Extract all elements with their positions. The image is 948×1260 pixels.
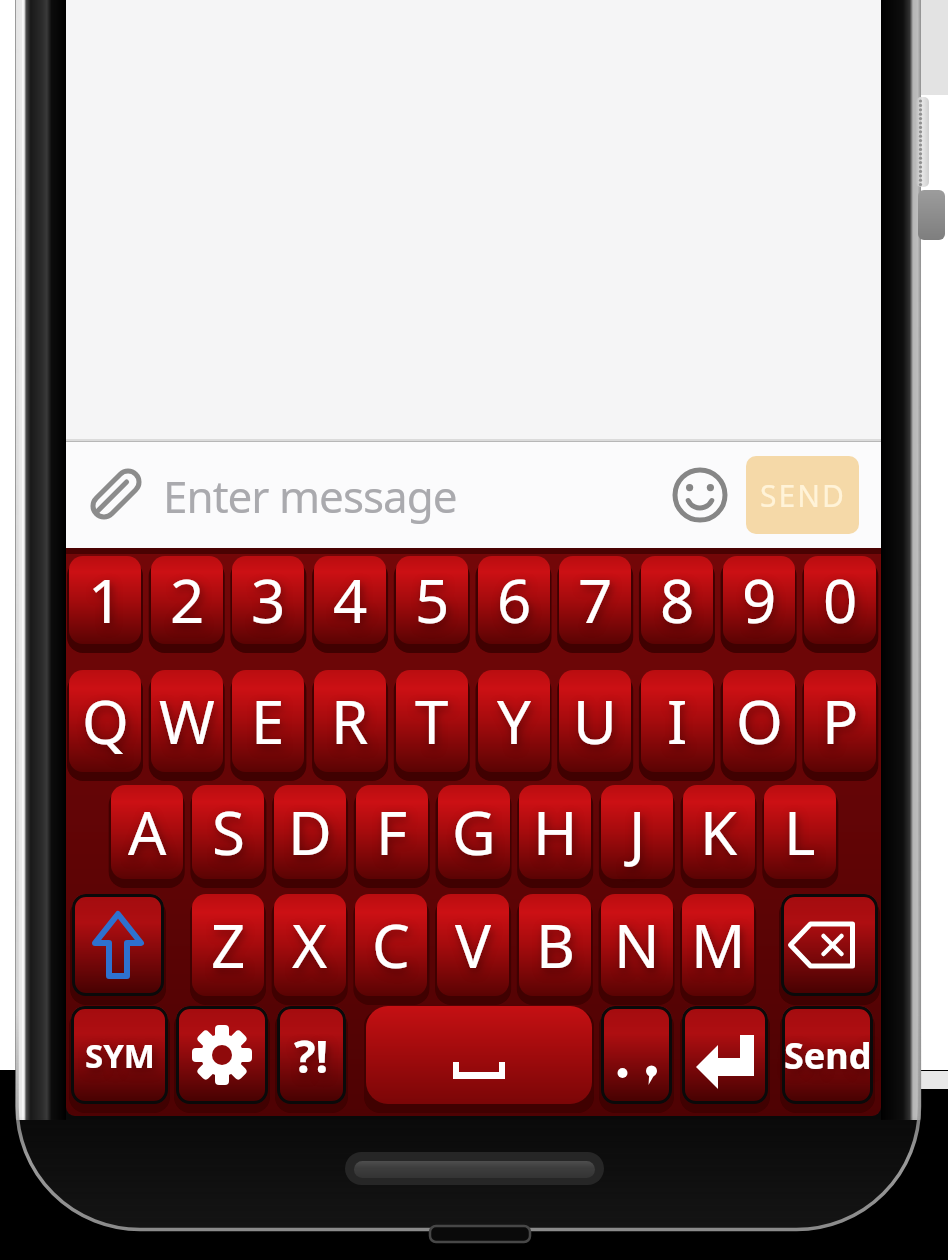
staticText: M xyxy=(691,904,746,986)
staticText: ?! xyxy=(294,1025,329,1086)
staticText: V xyxy=(455,904,491,986)
staticText: P xyxy=(822,680,859,762)
button[interactable]: V xyxy=(437,894,509,996)
button[interactable]: 2 xyxy=(151,556,223,644)
button[interactable]: C xyxy=(355,894,427,996)
button[interactable]: A xyxy=(111,785,183,879)
staticText: Z xyxy=(211,904,246,986)
staticText: L xyxy=(784,791,816,873)
staticText: 7 xyxy=(578,559,613,641)
button[interactable]: 8 xyxy=(641,556,713,644)
button[interactable]: 5 xyxy=(396,556,468,644)
button[interactable]: G xyxy=(438,785,510,879)
button[interactable] xyxy=(781,894,878,996)
button[interactable]: N xyxy=(601,894,673,996)
button[interactable]: J xyxy=(601,785,673,879)
staticText: SEND xyxy=(760,475,846,516)
staticText: K xyxy=(700,791,738,873)
button[interactable] xyxy=(72,894,164,996)
staticText: 4 xyxy=(333,559,368,641)
staticText: X xyxy=(292,904,328,986)
staticText: A xyxy=(128,791,167,873)
button[interactable]: ?! xyxy=(277,1006,346,1104)
button[interactable]: K xyxy=(683,785,755,879)
staticText: 6 xyxy=(497,559,532,641)
staticText: 3 xyxy=(251,559,286,641)
button[interactable] xyxy=(176,1006,268,1104)
button[interactable]: O xyxy=(723,670,795,772)
button[interactable]: X xyxy=(274,894,346,996)
button[interactable]: Y xyxy=(478,670,550,772)
staticText: U xyxy=(573,680,617,762)
staticText: Q xyxy=(82,680,129,762)
button[interactable]: R xyxy=(314,670,386,772)
button[interactable]: 4 xyxy=(314,556,386,644)
button[interactable]: P xyxy=(804,670,876,772)
button[interactable] xyxy=(601,1006,672,1104)
staticText: 1 xyxy=(88,559,123,641)
button[interactable]: L xyxy=(764,785,836,879)
button[interactable]: M xyxy=(682,894,754,996)
button[interactable]: T xyxy=(396,670,468,772)
staticText: I xyxy=(667,680,688,762)
button[interactable]: SEND xyxy=(746,456,859,534)
button[interactable]: H xyxy=(519,785,591,879)
staticText: J xyxy=(629,791,646,873)
staticText: 8 xyxy=(660,559,695,641)
button[interactable]: U xyxy=(559,670,631,772)
button[interactable]: Z xyxy=(192,894,264,996)
button[interactable]: B xyxy=(519,894,591,996)
button[interactable] xyxy=(682,1006,768,1104)
staticText: W xyxy=(159,680,215,762)
button[interactable]: 1 xyxy=(69,556,141,644)
staticText: B xyxy=(536,904,575,986)
button[interactable]: 6 xyxy=(478,556,550,644)
staticText: T xyxy=(415,680,449,762)
staticText: H xyxy=(533,791,578,873)
button[interactable]: Q xyxy=(69,670,141,772)
staticText: S xyxy=(212,791,245,873)
button[interactable]: E xyxy=(232,670,304,772)
button[interactable]: F xyxy=(356,785,428,879)
staticText: O xyxy=(736,680,783,762)
staticText: D xyxy=(288,791,332,873)
staticText: 5 xyxy=(415,559,450,641)
button[interactable] xyxy=(80,450,730,540)
staticText: Enter message xyxy=(163,466,457,526)
staticText: G xyxy=(452,791,496,873)
button[interactable]: D xyxy=(274,785,346,879)
staticText: R xyxy=(331,680,369,762)
button[interactable]: W xyxy=(151,670,223,772)
staticText: 0 xyxy=(823,559,858,641)
staticText: 2 xyxy=(170,559,205,641)
button[interactable]: 7 xyxy=(559,556,631,644)
staticText: Send xyxy=(784,1031,872,1080)
staticText: 9 xyxy=(742,559,777,641)
button[interactable]: Send xyxy=(782,1006,873,1104)
staticText: Y xyxy=(497,680,531,762)
staticText: SYM xyxy=(85,1033,155,1078)
staticText: F xyxy=(376,791,408,873)
button[interactable]: 3 xyxy=(232,556,304,644)
button[interactable] xyxy=(366,1006,592,1104)
staticText: E xyxy=(251,680,285,762)
button[interactable]: I xyxy=(641,670,713,772)
staticText: N xyxy=(614,904,660,986)
staticText: C xyxy=(372,904,410,986)
button[interactable]: 9 xyxy=(723,556,795,644)
button[interactable]: S xyxy=(192,785,264,879)
button[interactable]: 0 xyxy=(804,556,876,644)
button[interactable]: SYM xyxy=(71,1006,168,1104)
